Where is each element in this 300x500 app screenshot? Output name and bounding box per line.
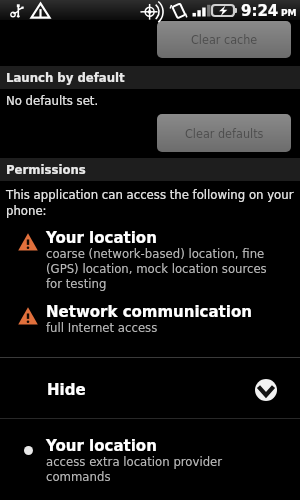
- staticText: Clear cache: [191, 32, 258, 47]
- staticText: Network communication: [46, 303, 252, 320]
- button[interactable]: Clear cache: [157, 21, 291, 58]
- button[interactable]: Your location: [0, 229, 300, 291]
- button[interactable]: Hide: [0, 357, 300, 419]
- staticText: Your location: [46, 437, 157, 454]
- staticText: coarse (network-based) location, fine (G…: [46, 246, 270, 291]
- staticText: 9:24: [241, 2, 279, 19]
- other: Collapse section: [255, 379, 277, 401]
- button[interactable]: Launch by default: [0, 66, 300, 89]
- staticText: Launch by default: [6, 70, 125, 85]
- staticText: No defaults set.: [6, 93, 99, 108]
- button[interactable]: Permissions: [0, 158, 300, 181]
- staticText: access extra location provider commands: [46, 454, 270, 484]
- staticText: Hide: [47, 381, 86, 398]
- staticText: Clear defaults: [185, 126, 264, 141]
- staticText: Your location: [46, 229, 157, 246]
- button[interactable]: Your location: [0, 437, 300, 484]
- button[interactable]: Network communication: [0, 303, 300, 335]
- button[interactable]: Clear defaults: [157, 114, 291, 152]
- staticText: This application can access the followin…: [6, 187, 294, 218]
- staticText: Permissions: [6, 162, 86, 177]
- staticText: full Internet access: [46, 320, 158, 335]
- staticText: PM: [281, 8, 297, 18]
